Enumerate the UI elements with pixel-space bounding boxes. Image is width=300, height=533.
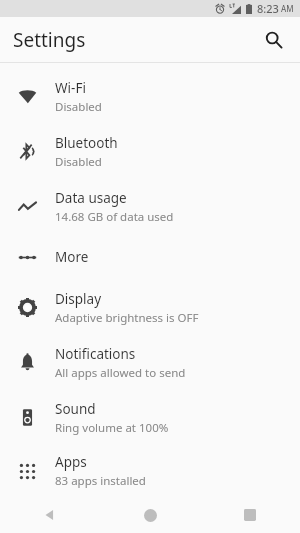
- staticText: More: [55, 248, 89, 266]
- button[interactable]: More: [0, 234, 300, 280]
- staticText: Notifications: [55, 345, 136, 363]
- staticText: Disabled: [55, 154, 102, 170]
- staticText: Disabled: [55, 99, 102, 115]
- button[interactable]: Apps: [0, 445, 300, 497]
- button[interactable]: Recent apps: [200, 497, 300, 533]
- button[interactable]: Bluetooth: [0, 124, 300, 179]
- button[interactable]: Wi-Fi: [0, 69, 300, 124]
- staticText: AM: [281, 3, 294, 14]
- staticText: Sound: [55, 400, 96, 418]
- button[interactable]: Search: [256, 22, 292, 58]
- staticText: Bluetooth: [55, 134, 118, 152]
- staticText: Wi-Fi: [55, 79, 86, 97]
- staticText: All apps allowed to send: [55, 365, 186, 381]
- button[interactable]: Home: [100, 497, 200, 533]
- staticText: Display: [55, 290, 102, 308]
- button[interactable]: Sound: [0, 390, 300, 445]
- staticText: Ring volume at 100%: [55, 420, 169, 436]
- staticText: Adaptive brightness is OFF: [55, 310, 199, 326]
- staticText: Settings: [13, 27, 86, 53]
- button[interactable]: Notifications: [0, 335, 300, 390]
- staticText: Apps: [55, 453, 87, 471]
- staticText: 14.68 GB of data used: [55, 209, 174, 225]
- button[interactable]: Data usage: [0, 179, 300, 234]
- button[interactable]: Back: [0, 497, 100, 533]
- staticText: 83 apps installed: [55, 473, 146, 489]
- button[interactable]: Display: [0, 280, 300, 335]
- staticText: 8:23: [257, 1, 279, 16]
- staticText: Data usage: [55, 189, 127, 207]
